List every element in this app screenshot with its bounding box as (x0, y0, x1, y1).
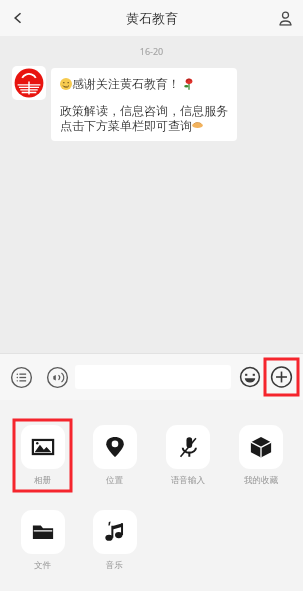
staticText: 位置 (106, 475, 123, 486)
staticText: 点击下方菜单栏即可查询 (60, 118, 192, 133)
button[interactable]: Voice (41, 361, 73, 393)
staticText: 语音输入 (171, 475, 205, 486)
staticText: 政策解读，信息咨询，信息服务 (60, 103, 228, 118)
staticText: 16-20 (0, 45, 303, 57)
button[interactable]: 感谢关注黄石教育！ (51, 68, 237, 141)
button[interactable]: Contact profile (267, 0, 303, 36)
staticText: 我的收藏 (244, 475, 278, 486)
button[interactable]: My favorites (232, 420, 289, 491)
staticText: 相册 (34, 475, 51, 486)
button[interactable]: More options (265, 359, 298, 395)
staticText: 黄石教育 (126, 10, 178, 26)
button[interactable]: Music (86, 505, 143, 576)
button[interactable]: Avatar (12, 66, 46, 100)
button[interactable]: Album (14, 420, 71, 491)
button[interactable]: Menu (5, 361, 37, 393)
staticText: 文件 (34, 560, 51, 571)
staticText: 音乐 (106, 560, 123, 571)
staticText: 感谢关注黄石教育！ (72, 76, 180, 91)
button[interactable]: Back (0, 0, 36, 36)
button[interactable]: Emoji (235, 362, 265, 392)
button[interactable]: Location (86, 420, 143, 491)
button[interactable]: Files (14, 505, 71, 576)
button[interactable]: Voice input (159, 420, 216, 491)
